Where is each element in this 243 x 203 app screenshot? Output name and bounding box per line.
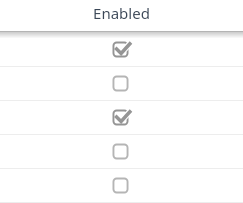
staticText: Enabled (93, 3, 150, 23)
button[interactable]: Enabled, checked (109, 38, 135, 62)
button[interactable]: Enabled, checked (0, 101, 243, 135)
button[interactable]: Enabled, checked (109, 106, 135, 130)
button[interactable]: Enabled (0, 0, 243, 31)
button[interactable]: Enabled, unchecked (0, 169, 243, 203)
button[interactable]: Enabled, unchecked (0, 135, 243, 169)
button[interactable]: Enabled, checked (0, 33, 243, 67)
button[interactable]: Enabled, unchecked (109, 140, 135, 164)
button[interactable]: Enabled, unchecked (109, 174, 135, 198)
button[interactable]: Enabled, unchecked (109, 72, 135, 96)
button[interactable]: Enabled, unchecked (0, 67, 243, 101)
